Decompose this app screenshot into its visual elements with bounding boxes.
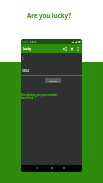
staticText: Good luck :) xyxy=(21,96,36,99)
button[interactable]: Recents xyxy=(61,165,67,171)
staticText: SHOOT xyxy=(49,79,58,82)
button[interactable]: Share xyxy=(61,45,69,53)
staticText: 0 xyxy=(22,57,24,61)
button[interactable]: SHOOT xyxy=(45,78,61,83)
button[interactable]: Back xyxy=(34,165,40,171)
staticText: Are you lucky? xyxy=(27,11,72,19)
staticText: You already got your number xyxy=(21,93,58,96)
staticText: Lucky xyxy=(23,47,31,51)
staticText: 3824 xyxy=(22,69,30,73)
button[interactable]: Lucky star xyxy=(68,45,76,53)
button[interactable]: More options xyxy=(74,45,82,53)
button[interactable]: Home xyxy=(49,165,55,171)
